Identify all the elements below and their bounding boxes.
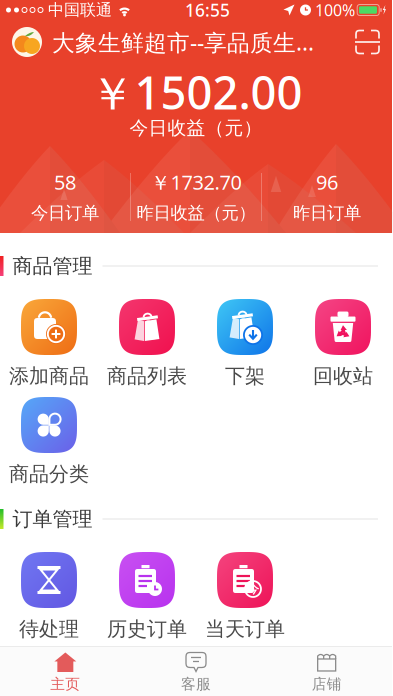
button[interactable]: 扫一扫 bbox=[343, 20, 392, 64]
button[interactable]: 店铺 bbox=[261, 651, 392, 693]
button[interactable]: 客服 bbox=[131, 651, 261, 693]
staticText: 下架 bbox=[225, 364, 265, 388]
staticText: 商品列表 bbox=[107, 364, 187, 388]
staticText: 昨日订单 bbox=[293, 202, 361, 224]
button[interactable]: 下架 bbox=[196, 299, 294, 386]
staticText: 客服 bbox=[181, 675, 211, 693]
staticText: ￥1502.00 bbox=[89, 62, 302, 122]
staticText: 中国联通 bbox=[48, 0, 112, 20]
staticText: ￥1732.70 bbox=[150, 169, 241, 195]
staticText: 待处理 bbox=[19, 617, 79, 641]
staticText: 96 bbox=[316, 169, 338, 195]
staticText: 主页 bbox=[50, 675, 80, 693]
staticText: 历史订单 bbox=[107, 617, 187, 641]
staticText: 商品分类 bbox=[9, 462, 89, 486]
button[interactable]: 回收站 bbox=[294, 299, 392, 386]
button[interactable]: 商品列表 bbox=[98, 299, 196, 386]
staticText: 100% bbox=[315, 0, 355, 21]
staticText: 昨日收益（元） bbox=[136, 202, 255, 224]
button[interactable]: 待处理 bbox=[0, 552, 98, 639]
staticText: 回收站 bbox=[313, 364, 373, 388]
button[interactable]: 商品分类 bbox=[0, 397, 98, 484]
staticText: 58 bbox=[54, 169, 76, 195]
staticText: 今日订单 bbox=[31, 202, 99, 224]
staticText: 店铺 bbox=[312, 675, 342, 693]
staticText: 订单管理 bbox=[12, 507, 92, 531]
button[interactable]: 主页 bbox=[0, 651, 131, 693]
staticText: 16:55 bbox=[185, 0, 230, 21]
staticText: 当天订单 bbox=[205, 617, 285, 641]
staticText: 添加商品 bbox=[9, 364, 89, 388]
button[interactable]: 添加商品 bbox=[0, 299, 98, 386]
staticText: 今日收益（元） bbox=[129, 116, 262, 139]
staticText: 商品管理 bbox=[12, 254, 92, 278]
button[interactable]: 历史订单 bbox=[98, 552, 196, 639]
staticText: 大象生鲜超市--享品质生活上… bbox=[52, 27, 335, 57]
staticText: 今 bbox=[247, 582, 259, 596]
button[interactable]: 今 bbox=[196, 552, 294, 639]
